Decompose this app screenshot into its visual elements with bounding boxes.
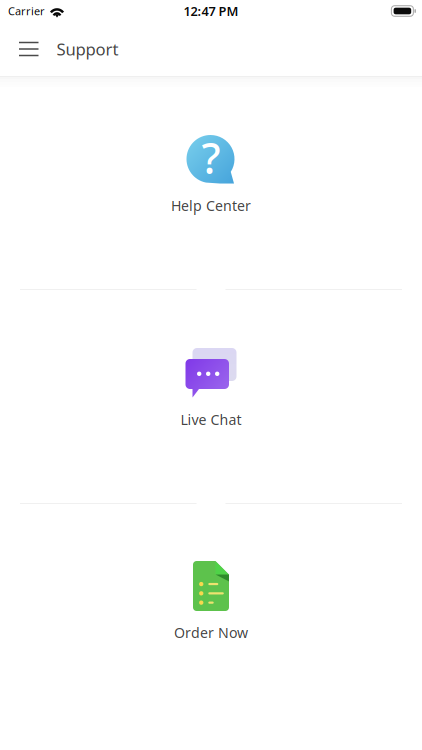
- staticText: Live Chat: [180, 410, 241, 429]
- staticText: Carrier: [8, 4, 45, 18]
- staticText: Support: [56, 38, 118, 60]
- staticText: Order Now: [174, 623, 248, 642]
- button[interactable]: Menu: [0, 27, 56, 71]
- staticText: 12:47 PM: [183, 2, 238, 20]
- button[interactable]: Order Now: [0, 561, 422, 642]
- staticText: Help Center: [171, 196, 251, 215]
- button[interactable]: Live Chat: [0, 348, 422, 429]
- staticText: ?: [201, 129, 220, 186]
- button[interactable]: ?: [0, 135, 422, 215]
